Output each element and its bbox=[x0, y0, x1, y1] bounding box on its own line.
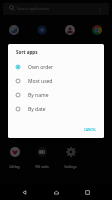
button[interactable]: Search applications bbox=[0, 0, 112, 16]
button[interactable]: Settings bbox=[56, 147, 84, 173]
button[interactable]: By date bbox=[8, 103, 104, 115]
button[interactable]: Clock bbox=[5, 21, 23, 39]
staticText: FM radio bbox=[35, 165, 49, 169]
button[interactable]: Phone bbox=[33, 21, 51, 39]
button[interactable]: Back bbox=[16, 184, 32, 200]
button[interactable]: Own order bbox=[8, 61, 104, 73]
button[interactable]: Most used bbox=[8, 75, 104, 87]
staticText: Most used bbox=[28, 78, 53, 85]
staticText: CANCEL bbox=[84, 128, 97, 132]
button[interactable]: Recent apps bbox=[79, 184, 95, 200]
staticText: Sort apps bbox=[16, 49, 38, 55]
button[interactable]: Home bbox=[48, 184, 64, 200]
staticText: By date bbox=[28, 106, 46, 113]
button[interactable]: FM radio bbox=[28, 147, 56, 173]
staticText: Own order bbox=[28, 64, 54, 71]
button[interactable]: CANCEL bbox=[76, 124, 104, 136]
button[interactable]: Chrome bbox=[88, 21, 106, 39]
button[interactable]: Lifelog bbox=[0, 147, 28, 173]
button[interactable]: Contacts bbox=[61, 21, 79, 39]
button[interactable] bbox=[3, 3, 109, 15]
staticText: Settings bbox=[64, 165, 77, 169]
staticText: Lifelog bbox=[9, 165, 20, 169]
staticText: Search applications bbox=[17, 6, 49, 11]
staticText: By name bbox=[28, 92, 49, 99]
button[interactable]: By name bbox=[8, 89, 104, 101]
